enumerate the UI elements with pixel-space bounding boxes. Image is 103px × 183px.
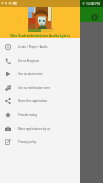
button[interactable]: More options [89,12,100,23]
staticText: Shiv Rudrabhishekam Audio Lyrics [10,33,70,38]
staticText: Privacy policy [18,140,37,144]
button[interactable]: Set as Ringtone [0,54,80,68]
staticText: 12:08 PM [86,1,101,5]
button[interactable]: Listen / Player / Audio [0,40,80,54]
button[interactable]: Privacy policy [0,135,80,149]
staticText: Use as notification tone [18,86,50,90]
button[interactable]: Share this application [0,94,80,108]
button[interactable]: Use as alarm tone [0,67,80,81]
staticText: Listen / Player / Audio [18,45,48,49]
staticText: More applications by us [18,127,51,131]
button[interactable]: Use as notification tone [0,81,80,95]
staticText: Share this application [18,99,48,103]
button[interactable]: More applications by us [0,122,80,136]
staticText: Set as Ringtone [18,59,40,63]
staticText: Use as alarm tone [18,72,43,76]
staticText: Provide rating [18,113,38,117]
button[interactable]: Provide rating [0,108,80,122]
